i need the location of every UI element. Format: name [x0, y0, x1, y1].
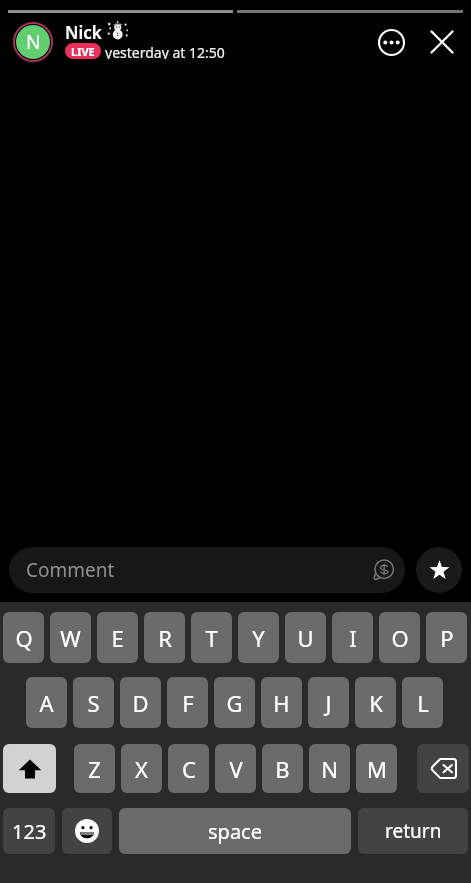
button[interactable]: N — [309, 744, 350, 793]
staticText: space — [208, 818, 262, 845]
staticText: F — [182, 688, 194, 718]
button[interactable]: More options — [371, 22, 411, 62]
staticText: T — [205, 623, 218, 653]
button[interactable]: M — [356, 744, 397, 793]
staticText: X — [135, 754, 148, 784]
button[interactable]: Z — [74, 744, 115, 793]
button[interactable]: V — [215, 744, 256, 793]
staticText: S — [87, 688, 100, 718]
staticText: M — [367, 754, 387, 784]
staticText: I — [349, 623, 357, 653]
button[interactable]: Comment — [9, 547, 405, 593]
button[interactable]: J — [308, 677, 349, 728]
staticText: K — [369, 688, 383, 718]
staticText: Q — [15, 623, 33, 653]
staticText: G — [226, 688, 243, 718]
staticText: W — [60, 623, 81, 653]
staticText: C — [182, 754, 196, 784]
staticText: E — [111, 623, 124, 653]
button[interactable]: K — [355, 677, 396, 728]
button[interactable]: X — [121, 744, 162, 793]
staticText: yesterday at 12:50 — [105, 43, 225, 59]
button[interactable]: return — [358, 808, 468, 854]
button[interactable]: Highlight — [416, 547, 462, 593]
button[interactable]: T — [191, 612, 232, 663]
button[interactable]: I — [332, 612, 373, 663]
button[interactable]: L — [402, 677, 443, 728]
staticText: Nick — [65, 21, 102, 39]
button[interactable]: space — [119, 808, 351, 854]
staticText: P — [440, 623, 454, 653]
button[interactable]: Shift — [3, 744, 56, 793]
staticText: H — [273, 688, 290, 718]
button[interactable]: R — [144, 612, 185, 663]
staticText: A — [39, 688, 54, 718]
staticText: LIVE — [71, 44, 95, 59]
staticText: return — [385, 818, 442, 844]
staticText: N — [26, 29, 41, 55]
button[interactable]: D — [120, 677, 161, 728]
button[interactable]: W — [50, 612, 91, 663]
button[interactable]: O — [379, 612, 420, 663]
staticText: Comment — [26, 557, 115, 583]
button[interactable]: F — [167, 677, 208, 728]
button[interactable]: Q — [3, 612, 44, 663]
button[interactable]: Close — [422, 22, 462, 62]
button[interactable]: A — [26, 677, 67, 728]
button[interactable]: U — [285, 612, 326, 663]
staticText: O — [391, 623, 409, 653]
button[interactable]: S — [73, 677, 114, 728]
button[interactable]: G — [214, 677, 255, 728]
button[interactable]: Emoji — [62, 808, 112, 854]
staticText: Y — [252, 623, 265, 653]
staticText: R — [158, 623, 172, 653]
button[interactable]: E — [97, 612, 138, 663]
button[interactable]: 123 — [3, 808, 55, 854]
staticText: V — [229, 754, 243, 784]
staticText: J — [325, 688, 332, 718]
button[interactable]: P — [426, 612, 467, 663]
button[interactable]: Y — [238, 612, 279, 663]
staticText: L — [417, 688, 429, 718]
staticText: N — [321, 754, 338, 784]
staticText: B — [275, 754, 290, 784]
staticText: D — [132, 688, 149, 718]
button[interactable]: H — [261, 677, 302, 728]
staticText: U — [297, 623, 314, 653]
button[interactable]: Backspace — [417, 744, 469, 793]
staticText: Z — [88, 754, 101, 784]
staticText: 123 — [12, 818, 47, 845]
button[interactable]: B — [262, 744, 303, 793]
button[interactable]: C — [168, 744, 209, 793]
